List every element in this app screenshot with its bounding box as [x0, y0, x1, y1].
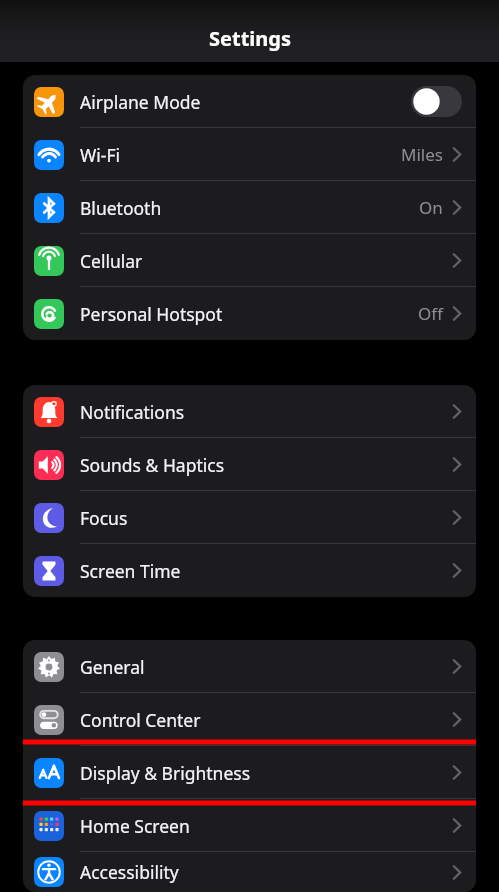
button[interactable]: General [23, 640, 476, 693]
staticText: Airplane Mode [80, 90, 201, 114]
staticText: Focus [80, 506, 128, 530]
staticText: On [419, 196, 443, 219]
button[interactable]: Sounds & Haptics [23, 438, 476, 491]
staticText: Screen Time [80, 559, 181, 583]
staticText: Off [418, 302, 443, 325]
staticText: Notifications [80, 400, 185, 424]
button[interactable]: Accessibility [23, 852, 476, 892]
staticText: Home Screen [80, 814, 190, 838]
button[interactable]: Personal Hotspot [23, 287, 476, 340]
button[interactable]: Airplane Mode [23, 75, 476, 128]
button[interactable]: Notifications [23, 385, 476, 438]
staticText: Wi-Fi [80, 143, 121, 167]
button[interactable]: Bluetooth [23, 181, 476, 234]
staticText: Accessibility [80, 860, 179, 884]
button[interactable]: Wi-Fi [23, 128, 476, 181]
button[interactable]: Screen Time [23, 544, 476, 597]
staticText: Sounds & Haptics [80, 453, 225, 477]
staticText: Personal Hotspot [80, 302, 223, 326]
button[interactable]: Cellular [23, 234, 476, 287]
staticText: Display & Brightness [80, 761, 251, 785]
staticText: Miles [401, 143, 443, 166]
staticText: Cellular [80, 249, 143, 273]
button[interactable]: Focus [23, 491, 476, 544]
staticText: Control Center [80, 708, 201, 732]
staticText: General [80, 655, 145, 679]
button[interactable]: Home Screen [23, 799, 476, 852]
button[interactable]: Control Center [23, 693, 476, 746]
button[interactable]: Display & Brightness [23, 746, 476, 799]
staticText: Settings [209, 25, 291, 52]
staticText: Bluetooth [80, 196, 162, 220]
